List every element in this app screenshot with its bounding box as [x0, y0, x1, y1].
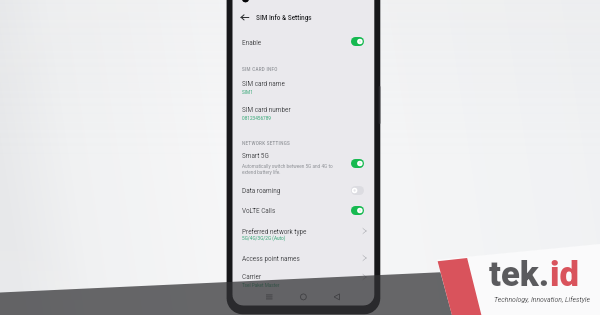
button[interactable]: Toggle on: [351, 37, 364, 46]
button[interactable]: Toggle on: [351, 159, 364, 168]
staticText: NETWORK SETTINGS: [242, 141, 290, 146]
button[interactable]: [233, 102, 375, 124]
staticText: 5G/4G/3G/2G (Auto): [242, 236, 286, 242]
staticText: Smart 5G: [242, 152, 269, 160]
button[interactable]: [233, 148, 375, 178]
staticText: VoLTE Calls: [242, 207, 276, 215]
staticText: SIM card number: [242, 106, 291, 114]
button[interactable]: [233, 30, 375, 56]
staticText: Carrier: [242, 273, 262, 281]
button[interactable]: Toggle on: [351, 206, 364, 215]
staticText: 08123456789: [242, 116, 271, 122]
staticText: Data roaming: [242, 187, 281, 195]
staticText: Tsel Paket Master: [242, 283, 280, 289]
staticText: Access point names: [242, 255, 300, 263]
button[interactable]: Back: [236, 10, 251, 25]
button[interactable]: [233, 76, 375, 98]
button[interactable]: [233, 180, 375, 200]
staticText: Enable: [242, 39, 262, 47]
button[interactable]: [233, 248, 375, 268]
button[interactable]: Toggle off: [351, 186, 364, 195]
staticText: SIM CARD INFO: [242, 67, 278, 72]
staticText: tek.: [489, 254, 550, 295]
staticText: Automatically switch between 5G and 4G t…: [242, 164, 333, 170]
button[interactable]: [233, 222, 375, 246]
button[interactable]: [233, 268, 375, 290]
staticText: SIM1: [242, 90, 253, 96]
staticText: SIM Info & Settings: [256, 14, 312, 22]
staticText: id: [550, 254, 579, 295]
button[interactable]: [233, 200, 375, 220]
staticText: Technology, Innovation, Lifestyle: [494, 296, 590, 304]
staticText: SIM card name: [242, 80, 285, 88]
staticText: Preferred network type: [242, 228, 307, 236]
staticText: extend battery life.: [242, 170, 281, 176]
